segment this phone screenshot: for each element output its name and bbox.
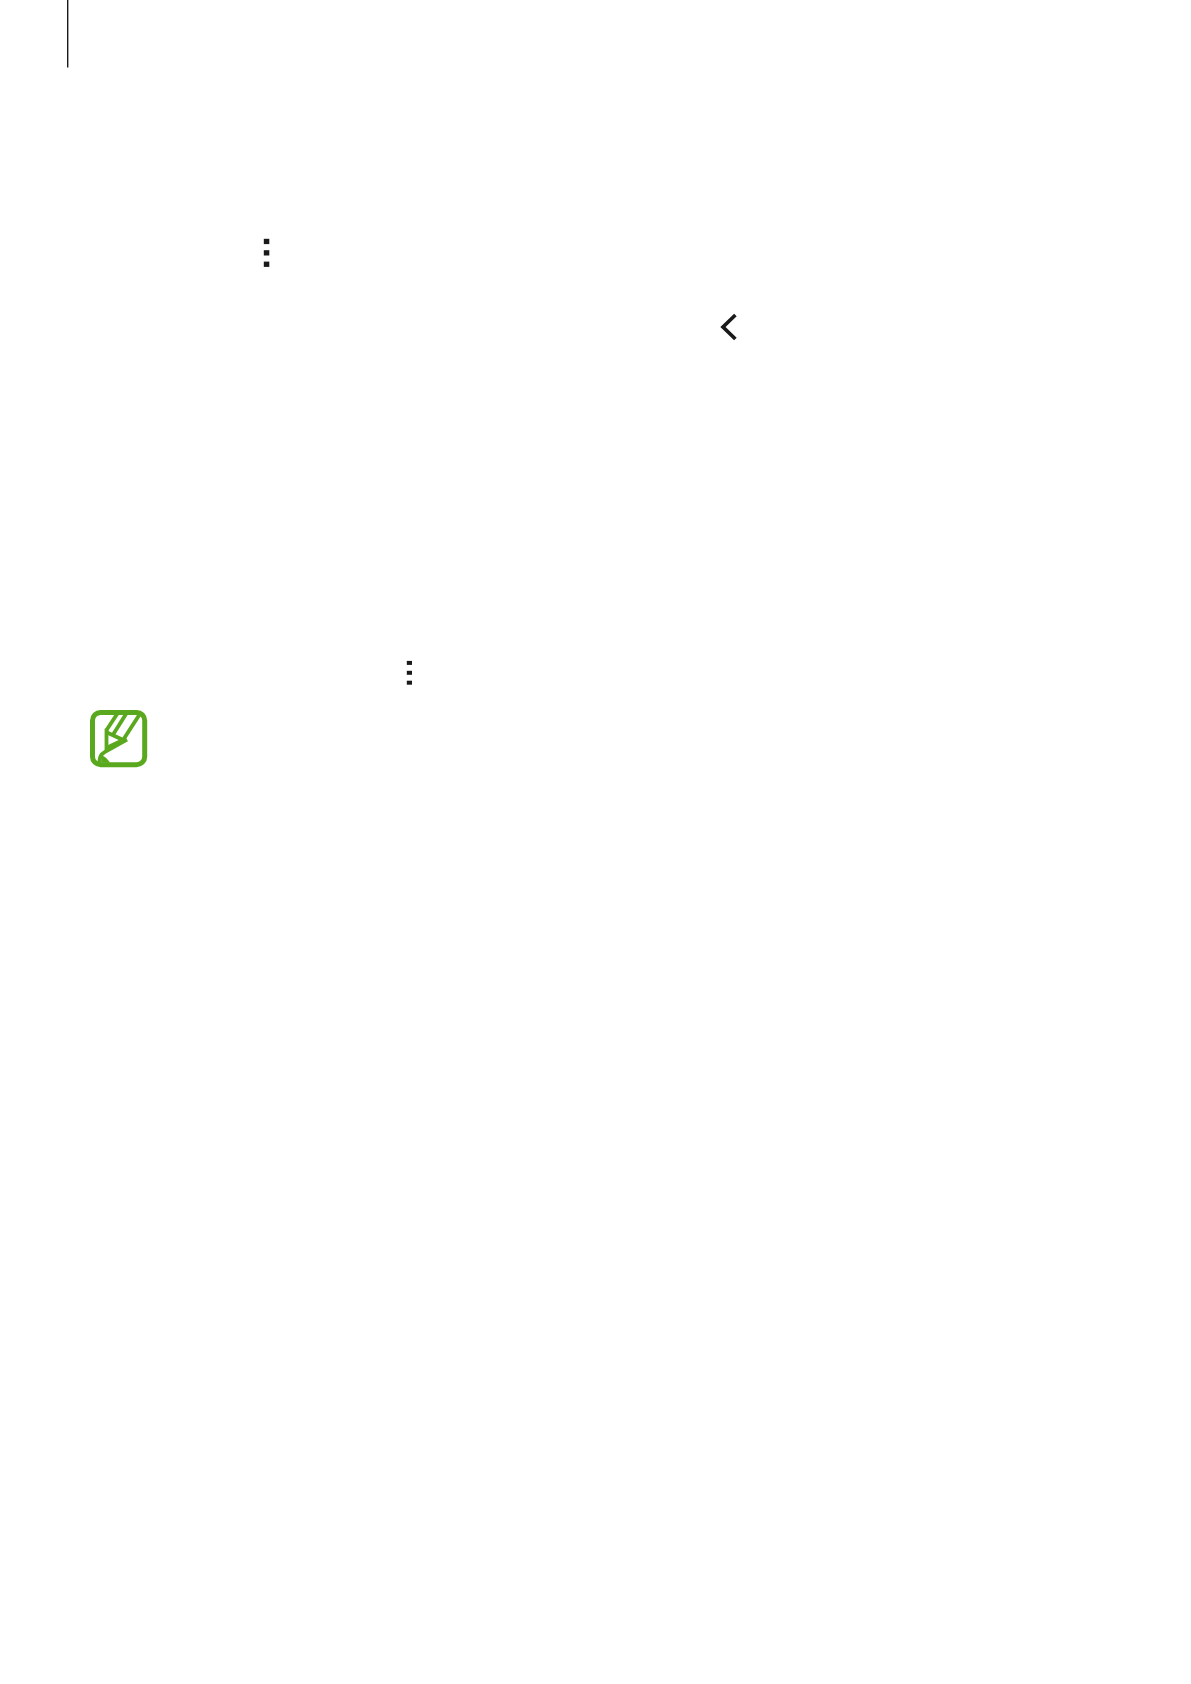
button[interactable]: More options xyxy=(384,640,434,690)
button[interactable]: More options xyxy=(240,215,292,267)
button[interactable]: Back xyxy=(703,303,753,351)
button[interactable]: S Note xyxy=(90,710,147,767)
